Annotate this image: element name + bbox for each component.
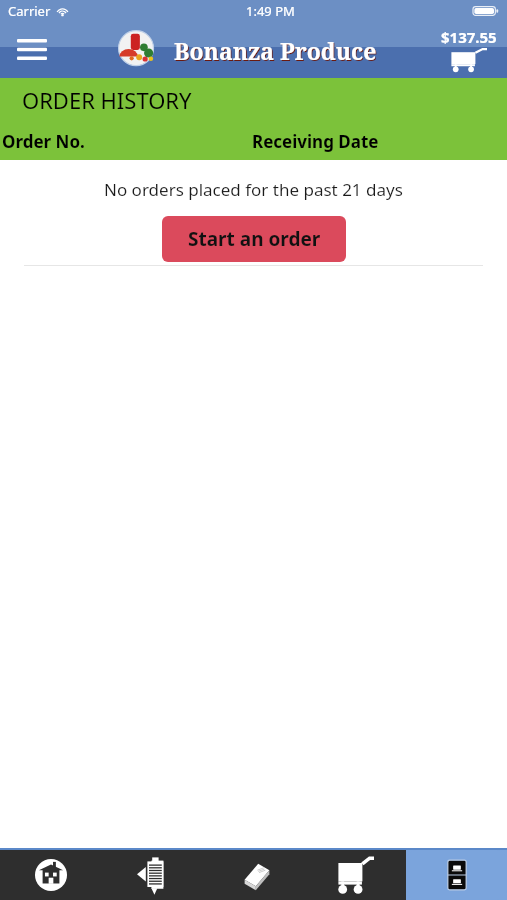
button[interactable]: Catalog xyxy=(204,850,305,900)
staticText: Order No. xyxy=(2,130,85,153)
staticText: Bonanza Produce xyxy=(174,35,377,66)
button[interactable]: Start an order xyxy=(162,216,346,262)
button[interactable]: Cart xyxy=(441,27,497,73)
button[interactable]: Home xyxy=(0,850,102,900)
staticText: No orders placed for the past 21 days xyxy=(104,178,403,201)
staticText: Carrier xyxy=(8,2,51,20)
staticText: Bonanza Produce xyxy=(175,36,378,67)
staticText: $137.55 xyxy=(441,27,497,47)
button[interactable]: Account xyxy=(406,850,507,900)
staticText: Start an order xyxy=(188,226,321,252)
button[interactable]: Menu xyxy=(8,26,56,74)
staticText: 1:49 PM xyxy=(246,2,295,20)
staticText: Receiving Date xyxy=(252,130,379,153)
staticText: ORDER HISTORY xyxy=(22,85,192,115)
button[interactable]: Cart xyxy=(305,850,406,900)
button[interactable]: Orders xyxy=(102,850,204,900)
